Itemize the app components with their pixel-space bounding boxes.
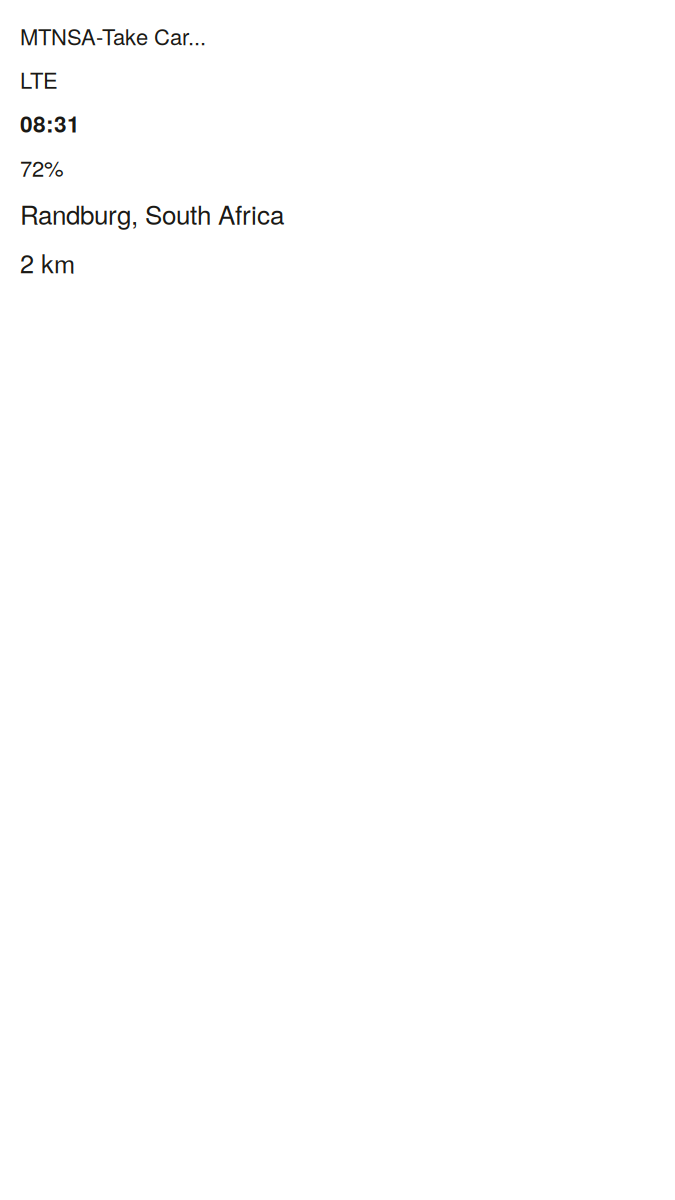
staticText: 08:31 bbox=[20, 107, 80, 139]
staticText: Randburg, South Africa bbox=[20, 195, 284, 232]
staticText: LTE bbox=[20, 63, 58, 95]
staticText: 2 km bbox=[20, 244, 75, 280]
staticText: MTNSA-Take Car... bbox=[20, 20, 206, 51]
staticText: 72% bbox=[20, 151, 64, 183]
